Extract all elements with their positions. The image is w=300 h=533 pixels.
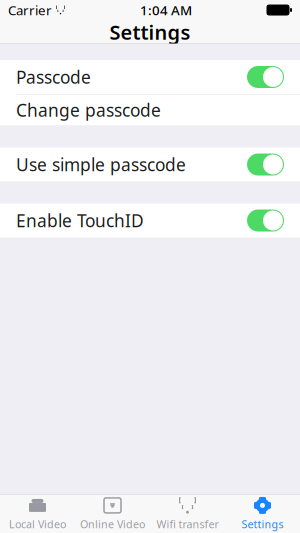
button[interactable]: Enable TouchID <box>0 203 300 237</box>
staticText: Use simple passcode <box>16 153 186 176</box>
staticText: Passcode <box>16 65 91 88</box>
button[interactable]: Use simple passcode <box>0 147 300 181</box>
button[interactable]: Local Video <box>0 494 75 533</box>
staticText: Carrier <box>8 1 52 19</box>
staticText: Settings <box>241 517 283 531</box>
button[interactable]: Change passcode <box>0 94 300 125</box>
staticText: Settings <box>109 19 190 45</box>
staticText: Wifi transfer <box>156 517 218 531</box>
button[interactable]: Settings <box>225 494 300 533</box>
staticText: Local Video <box>9 517 66 531</box>
button[interactable]: Online Video <box>75 494 150 533</box>
button[interactable]: Wifi transfer <box>150 494 225 533</box>
staticText: Enable TouchID <box>16 209 144 232</box>
button[interactable]: Passcode <box>0 60 300 94</box>
staticText: 1:04 AM <box>140 1 192 19</box>
staticText: Online Video <box>80 517 145 531</box>
staticText: Change passcode <box>16 98 161 121</box>
